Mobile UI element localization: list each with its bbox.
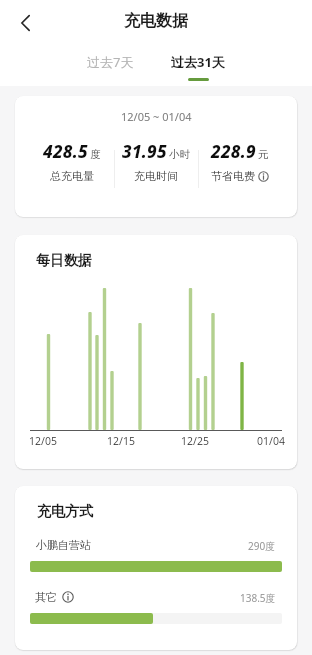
button[interactable]: 过去7天 bbox=[65, 49, 155, 75]
button[interactable]: 过去31天 bbox=[153, 49, 243, 75]
staticText: 12/05 bbox=[29, 434, 57, 448]
staticText: 充电数据 bbox=[124, 11, 188, 31]
staticText: 小鹏自营站 bbox=[36, 538, 91, 552]
staticText: 12/25 bbox=[181, 434, 209, 448]
staticText: 度 bbox=[90, 148, 101, 161]
button[interactable] bbox=[258, 171, 269, 182]
staticText: 元 bbox=[258, 148, 269, 161]
staticText: 充电时间 bbox=[134, 169, 178, 183]
staticText: 428.5 bbox=[43, 140, 88, 163]
staticText: 过去31天 bbox=[171, 53, 225, 71]
staticText: 290度 bbox=[248, 539, 276, 553]
staticText: 12/05 ~ 01/04 bbox=[121, 109, 192, 124]
staticText: 31.95 bbox=[122, 140, 167, 163]
staticText: 其它 bbox=[35, 590, 57, 604]
button[interactable] bbox=[6, 7, 40, 35]
button[interactable]: 其它 bbox=[35, 590, 74, 604]
staticText: 总充电量 bbox=[50, 169, 94, 183]
staticText: 228.9 bbox=[211, 140, 256, 163]
staticText: 01/04 bbox=[257, 434, 285, 448]
staticText: 过去7天 bbox=[87, 53, 134, 71]
staticText: 小时 bbox=[169, 148, 190, 161]
staticText: 充电方式 bbox=[37, 503, 93, 521]
staticText: 138.5度 bbox=[240, 591, 276, 605]
staticText: 12/15 bbox=[107, 434, 135, 448]
staticText: 每日数据 bbox=[36, 252, 92, 270]
staticText: 节省电费 bbox=[211, 169, 255, 183]
